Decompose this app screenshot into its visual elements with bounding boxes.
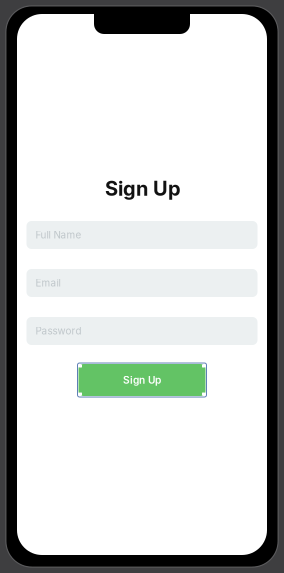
- button[interactable]: Full Name: [26, 221, 257, 249]
- button[interactable]: Sign Up: [75, 361, 208, 399]
- button[interactable]: Email: [26, 269, 257, 297]
- staticText: Sign Up: [123, 374, 161, 386]
- button[interactable]: Password: [26, 317, 257, 345]
- staticText: Sign Up: [105, 176, 181, 201]
- staticText: Email: [35, 277, 60, 289]
- staticText: Password: [35, 325, 81, 337]
- staticText: Full Name: [35, 229, 81, 241]
